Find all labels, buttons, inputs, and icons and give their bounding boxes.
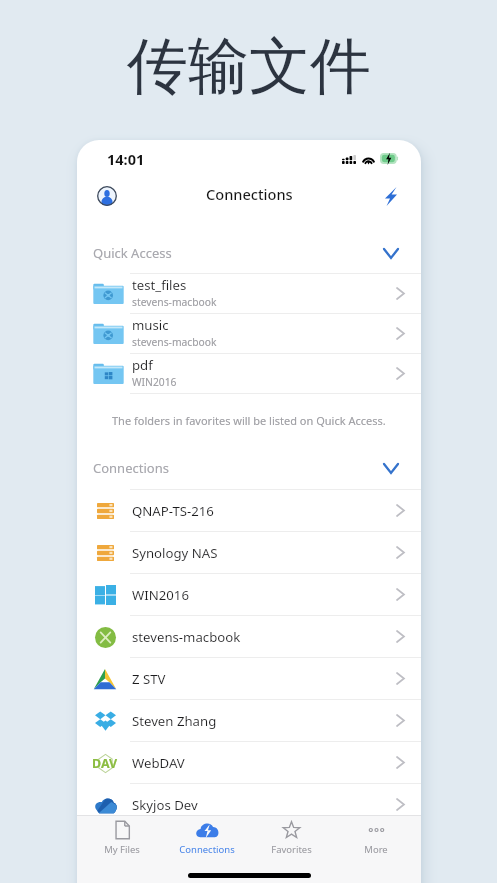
staticText: WIN2016 <box>132 586 189 604</box>
button[interactable]: stevens-macbook <box>77 616 421 657</box>
staticText: Z STV <box>132 670 166 688</box>
button[interactable]: pdf <box>77 354 421 393</box>
staticText: WebDAV <box>132 754 185 772</box>
staticText: Skyjos Dev <box>132 796 198 814</box>
staticText: QNAP-TS-216 <box>132 502 214 520</box>
staticText: pdf <box>132 356 153 374</box>
staticText: The folders in favorites will be listed … <box>112 413 386 428</box>
button[interactable]: test_files <box>77 274 421 313</box>
staticText: 14:01 <box>107 149 145 169</box>
staticText: More <box>364 843 388 856</box>
staticText: My Files <box>104 843 140 856</box>
staticText: 传输文件 <box>127 28 371 105</box>
staticText: stevens-macbook <box>132 295 217 309</box>
staticText: Synology NAS <box>132 544 218 562</box>
button[interactable]: Transfers <box>378 185 404 211</box>
button[interactable]: Connections <box>77 447 421 489</box>
button[interactable]: Steven Zhang <box>77 700 421 741</box>
staticText: Steven Zhang <box>132 712 217 730</box>
staticText: stevens-macbook <box>132 335 217 349</box>
staticText: test_files <box>132 276 187 294</box>
staticText: Connections <box>179 843 235 856</box>
button[interactable]: music <box>77 314 421 353</box>
button[interactable]: DAV <box>77 742 421 783</box>
staticText: DAV <box>92 755 118 772</box>
staticText: Connections <box>206 184 293 204</box>
button[interactable]: More <box>336 820 416 860</box>
button[interactable]: Z STV <box>77 658 421 699</box>
button[interactable]: Synology NAS <box>77 532 421 573</box>
staticText: Connections <box>93 459 169 477</box>
staticText: stevens-macbook <box>132 628 241 646</box>
staticText: Favorites <box>271 843 312 856</box>
button[interactable]: My Files <box>82 820 162 860</box>
staticText: Quick Access <box>93 244 172 262</box>
button[interactable]: Connections <box>167 820 247 860</box>
button[interactable]: WIN2016 <box>77 574 421 615</box>
staticText: music <box>132 316 169 334</box>
button[interactable]: Favorites <box>251 820 331 860</box>
button[interactable]: Quick Access <box>77 218 421 273</box>
button[interactable]: Skyjos Dev <box>77 784 421 825</box>
staticText: WIN2016 <box>132 375 177 389</box>
button[interactable]: Account <box>94 185 120 211</box>
button[interactable]: QNAP-TS-216 <box>77 490 421 531</box>
